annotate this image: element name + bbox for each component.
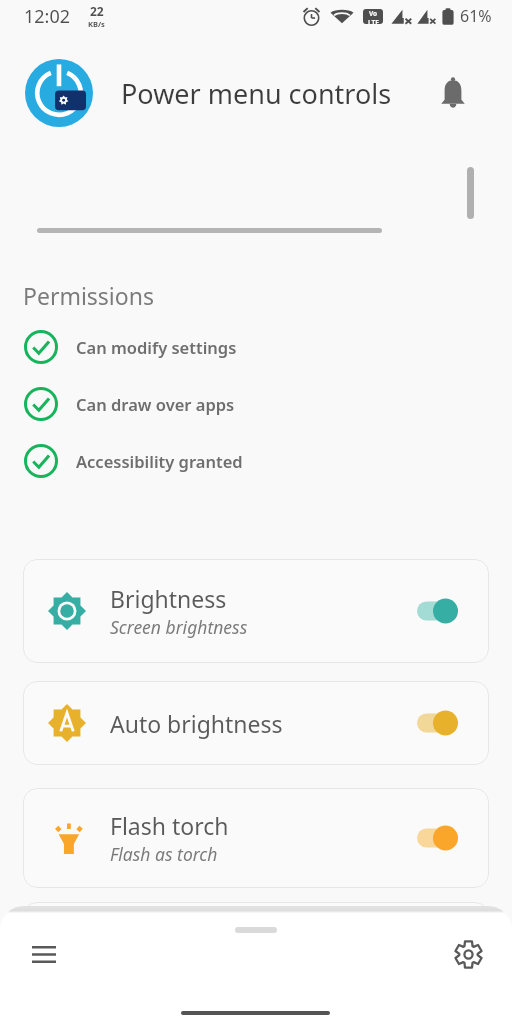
staticText: Auto brightness [110,708,283,739]
button[interactable]: Can modify settings [24,330,512,364]
staticText: Can draw over apps [76,393,235,415]
staticText: Permissions [23,280,154,311]
button[interactable]: Can draw over apps [24,387,512,421]
button[interactable]: Auto brightness [23,681,489,765]
button[interactable]: Toggle [417,706,458,740]
button[interactable]: Menu [20,930,68,978]
staticText: Vo [369,9,378,18]
button[interactable]: Toggle [417,821,458,855]
button[interactable]: Toggle [417,594,458,628]
staticText: Brightness [110,583,227,614]
staticText: Can modify settings [76,336,237,358]
staticText: 22 [90,3,104,19]
staticText: 12:02 [24,4,71,29]
staticText: Flash as torch [110,842,218,866]
staticText: Power menu controls [121,75,392,112]
staticText: Screen brightness [110,615,248,639]
button[interactable]: Flash torch [23,788,489,888]
button[interactable]: Brightness [23,559,489,663]
staticText: Flash torch [110,810,229,841]
button[interactable]: Settings [444,930,492,978]
button[interactable]: Accessibility granted [24,444,512,478]
staticText: LTE [368,18,379,24]
button[interactable]: Notifications [431,70,475,114]
staticText: Accessibility granted [76,450,243,472]
staticText: KB/s [88,19,105,29]
staticText: 61% [460,5,492,27]
